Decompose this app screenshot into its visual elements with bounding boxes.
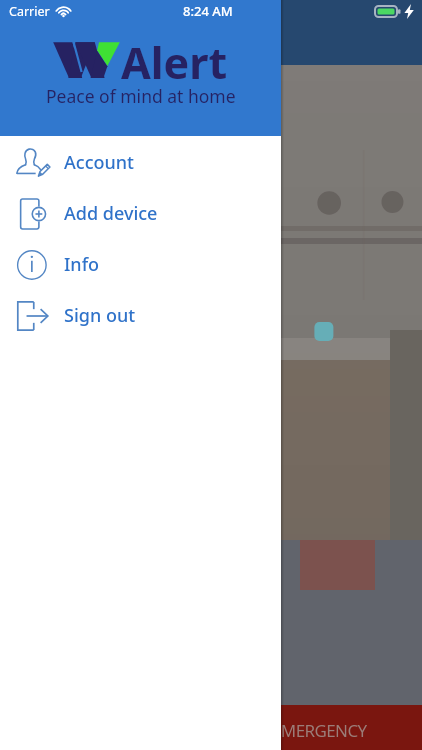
staticText: Info xyxy=(64,252,100,277)
staticText: EMERGENCY xyxy=(272,719,367,742)
staticText: Carrier xyxy=(9,3,50,20)
other: Info xyxy=(14,246,52,284)
other: Add device xyxy=(14,195,52,233)
staticText: Add device xyxy=(64,201,158,226)
button[interactable]: EMERGENCY xyxy=(0,705,422,750)
other: Account xyxy=(14,144,52,182)
staticText: Alert xyxy=(121,33,228,92)
other: Sign out xyxy=(14,297,52,335)
button[interactable]: Sign out xyxy=(0,290,281,341)
staticText: 8:24 AM xyxy=(183,2,233,20)
button[interactable]: Account xyxy=(0,137,281,188)
staticText: Peace of mind at home xyxy=(46,84,236,108)
staticText: Sign out xyxy=(64,303,136,328)
button[interactable]: Add device xyxy=(0,188,281,239)
staticText: Account xyxy=(64,150,134,175)
button[interactable]: Info xyxy=(0,239,281,290)
